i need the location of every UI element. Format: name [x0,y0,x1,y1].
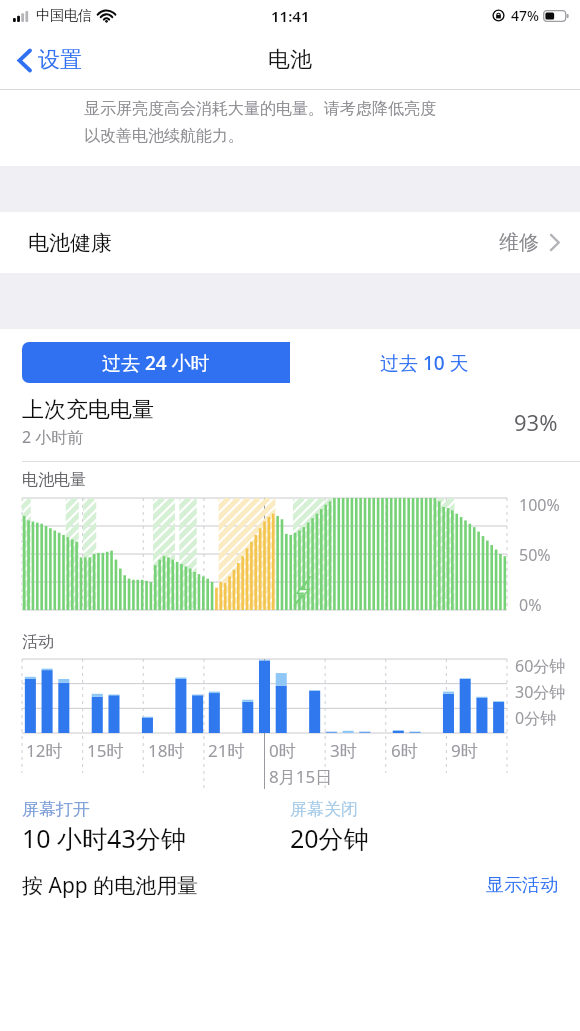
staticText: 3时 [330,739,357,762]
staticText: 50% [519,544,551,566]
staticText: 电池 [268,46,312,74]
staticText: 屏幕关闭 [290,799,358,820]
staticText: 设置 [38,46,82,74]
staticText: 93% [514,407,558,437]
staticText: 0时 [269,739,296,762]
staticText: 显示屏亮度高会消耗大量的电量。请考虑降低亮度 以改善电池续航能力。 [84,99,436,146]
staticText: 电池电量 [22,470,86,490]
staticText: 电池健康 [28,230,112,256]
staticText: 上次充电电量 [22,396,154,424]
staticText: 6时 [391,739,418,762]
staticText: 活动 [22,632,54,652]
staticText: 10 小时43分钟 [22,821,186,855]
button[interactable]: 电池健康 [0,212,580,273]
staticText: 0% [519,594,542,616]
button[interactable]: 显示活动 [486,874,558,897]
staticText: 维修 [499,230,539,255]
staticText: 过去 10 天 [380,350,469,376]
staticText: 11:41 [271,6,310,26]
button[interactable]: 过去 10 天 [290,342,558,383]
staticText: 47% [511,6,539,25]
staticText: 12时 [26,739,63,762]
staticText: 60分钟 [515,655,566,677]
staticText: 9时 [451,739,478,762]
staticText: 中国电信 [36,7,92,25]
button[interactable]: 设置 [12,38,88,82]
button[interactable]: 按 App 的电池用量 [22,871,199,900]
staticText: 21时 [208,739,245,762]
staticText: 2 小时前 [22,426,84,448]
staticText: 8月15日 [269,765,333,788]
button[interactable]: 过去 24 小时 [22,342,290,383]
staticText: 屏幕打开 [22,799,90,820]
staticText: 100% [519,494,560,516]
staticText: 过去 24 小时 [102,350,210,376]
staticText: 18时 [148,739,185,762]
staticText: 30分钟 [515,681,566,703]
staticText: 15时 [87,739,124,762]
staticText: 20分钟 [290,821,369,855]
staticText: 0分钟 [515,707,557,729]
